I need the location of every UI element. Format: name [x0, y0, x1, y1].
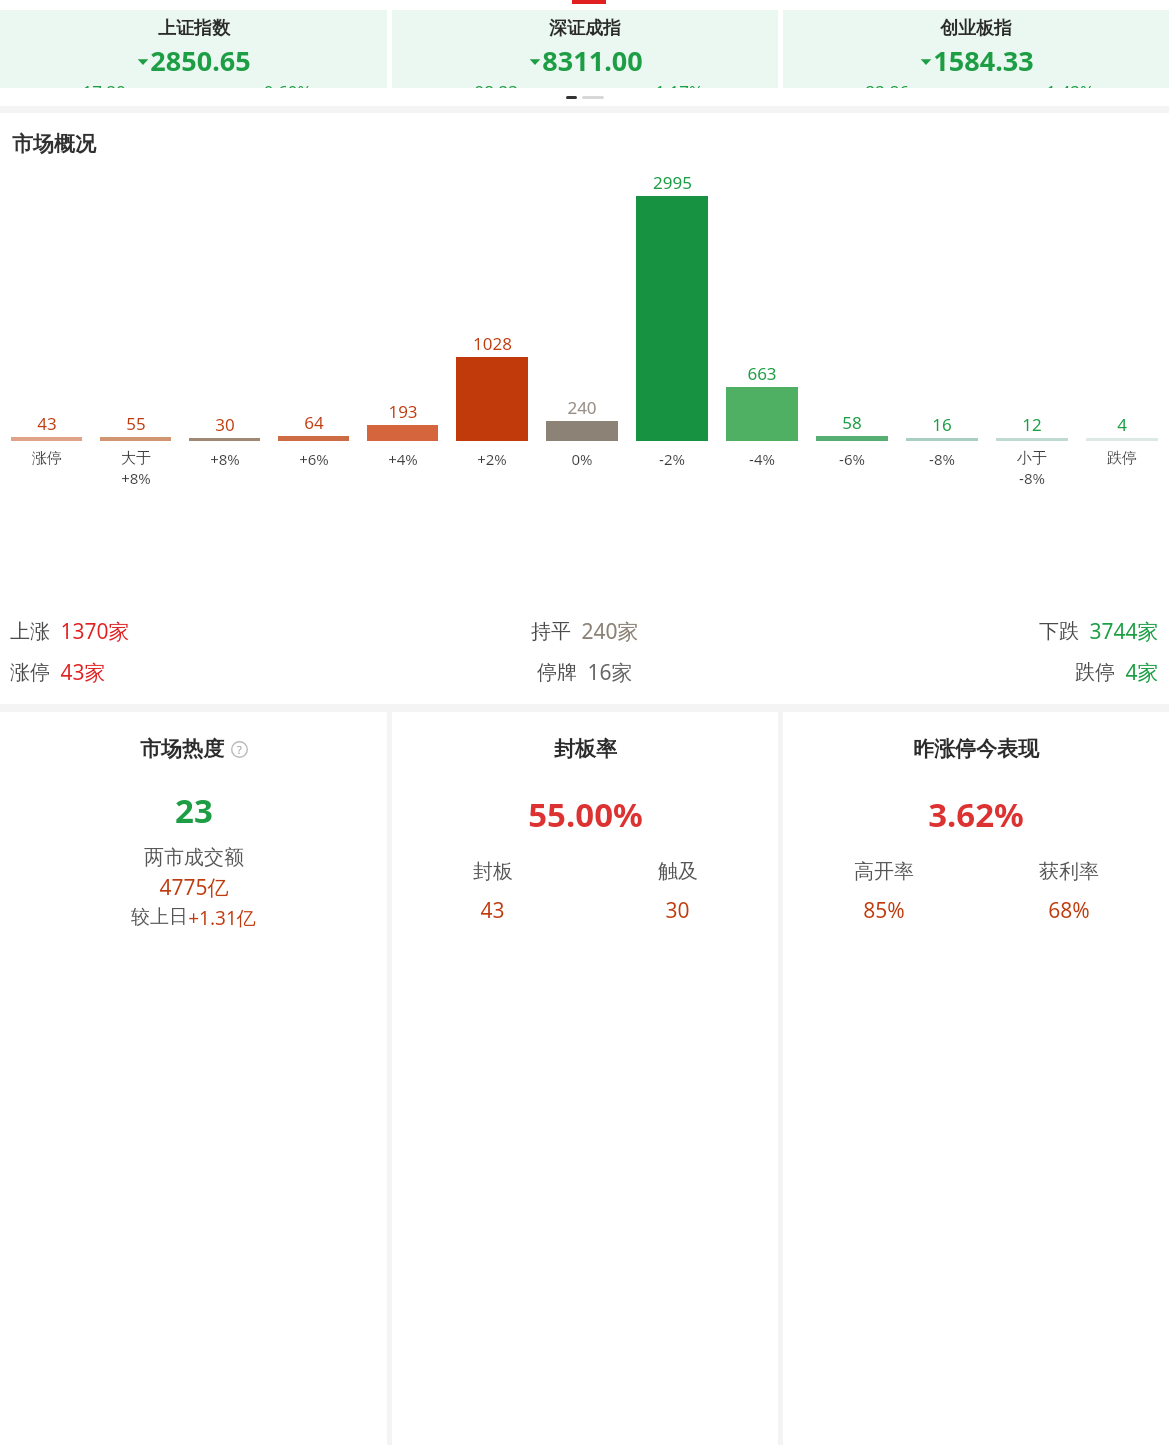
- staticText: 跌停: [1075, 660, 1115, 685]
- staticText: +8%: [121, 468, 151, 488]
- staticText: 1584.33: [933, 42, 1034, 79]
- staticText: 23: [175, 788, 213, 833]
- staticText: 3.62%: [928, 792, 1024, 837]
- button[interactable]: 市场热度: [0, 712, 387, 1445]
- staticText: -6%: [839, 449, 865, 469]
- staticText: 4775亿: [159, 873, 229, 902]
- staticText: -98.23: [402, 80, 585, 88]
- staticText: 55.00%: [528, 792, 643, 837]
- staticText: 30: [665, 896, 690, 925]
- staticText: 跌停: [1107, 449, 1137, 468]
- staticText: 高开率: [854, 859, 914, 884]
- button[interactable]: 创业板指: [783, 10, 1169, 88]
- staticText: +4%: [388, 449, 418, 469]
- staticText: 58: [842, 411, 862, 434]
- staticText: 2995: [653, 171, 692, 194]
- staticText: +8%: [210, 449, 240, 469]
- staticText: 43: [37, 412, 57, 435]
- staticText: 30: [215, 413, 235, 436]
- staticText: 市场概况: [12, 131, 96, 157]
- staticText: 0%: [571, 449, 593, 469]
- button[interactable]: 上证指数: [0, 10, 387, 88]
- staticText: -1.17%: [585, 80, 768, 88]
- staticText: -0.60%: [193, 80, 377, 88]
- staticText: 240家: [581, 617, 639, 646]
- button[interactable]: 深证成指: [392, 10, 778, 88]
- staticText: 2850.65: [150, 42, 251, 79]
- staticText: 1370家: [60, 617, 130, 646]
- staticText: 85%: [863, 896, 905, 925]
- staticText: 小于: [1017, 449, 1047, 468]
- staticText: 193: [388, 400, 418, 423]
- staticText: -1.42%: [976, 80, 1159, 88]
- staticText: 停牌: [537, 660, 577, 685]
- staticText: 涨停: [32, 449, 62, 468]
- staticText: 68%: [1048, 896, 1090, 925]
- staticText: 12: [1022, 413, 1042, 436]
- staticText: 较上日: [131, 905, 188, 929]
- staticText: -17.29: [10, 80, 193, 88]
- staticText: 昨涨停今表现: [913, 736, 1039, 762]
- staticText: 两市成交额: [144, 845, 244, 870]
- staticText: 封板: [473, 859, 513, 884]
- staticText: 43: [480, 896, 505, 925]
- staticText: 创业板指: [940, 17, 1012, 40]
- staticText: 封板率: [554, 736, 617, 762]
- staticText: 下跌: [1039, 619, 1079, 644]
- staticText: 上涨: [10, 619, 50, 644]
- staticText: -8%: [1019, 468, 1045, 488]
- staticText: 16家: [587, 658, 633, 687]
- staticText: 大于: [121, 449, 151, 468]
- staticText: 8311.00: [542, 42, 643, 79]
- button[interactable]: 封板率: [392, 712, 778, 1445]
- staticText: 持平: [531, 619, 571, 644]
- staticText: 4家: [1125, 658, 1159, 687]
- staticText: 16: [932, 413, 952, 436]
- staticText: 64: [304, 411, 324, 434]
- staticText: 上证指数: [158, 17, 230, 40]
- staticText: +2%: [477, 449, 507, 469]
- staticText: 1028: [473, 332, 512, 355]
- staticText: -2%: [659, 449, 685, 469]
- staticText: 深证成指: [549, 17, 621, 40]
- staticText: 240: [567, 396, 597, 419]
- staticText: 涨停: [10, 660, 50, 685]
- staticText: +1.31亿: [188, 905, 256, 931]
- staticText: 3744家: [1089, 617, 1159, 646]
- staticText: 获利率: [1039, 859, 1099, 884]
- staticText: 43家: [60, 658, 106, 687]
- staticText: -4%: [749, 449, 775, 469]
- staticText: +6%: [299, 449, 329, 469]
- staticText: 4: [1117, 413, 1127, 436]
- staticText: -8%: [929, 449, 955, 469]
- staticText: 触及: [658, 859, 698, 884]
- staticText: ?: [237, 742, 242, 757]
- button[interactable]: 昨涨停今表现: [783, 712, 1169, 1445]
- button[interactable]: 帮助: [231, 741, 248, 758]
- staticText: -22.86: [793, 80, 976, 88]
- staticText: 市场热度: [140, 736, 224, 762]
- staticText: 55: [126, 412, 146, 435]
- staticText: 663: [747, 362, 777, 385]
